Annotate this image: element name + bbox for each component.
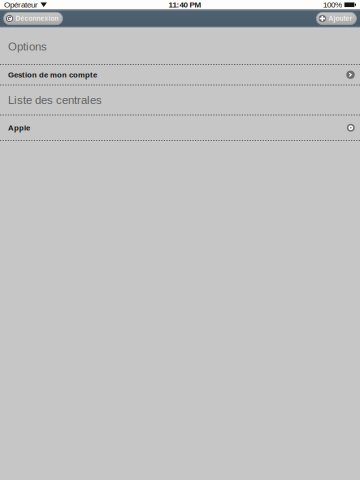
staticText: Ajouter (328, 15, 352, 22)
staticText: Gestion de mon compte (8, 70, 97, 79)
button[interactable]: Déconnexion (4, 12, 63, 25)
button[interactable]: Apple (0, 115, 360, 140)
staticText: 100% (323, 0, 342, 9)
staticText: Liste des centrales (8, 94, 102, 106)
staticText: Déconnexion (16, 15, 59, 22)
staticText: Opérateur (4, 0, 38, 9)
button[interactable]: Gestion de mon compte (0, 65, 360, 84)
button[interactable]: Ajouter (316, 12, 356, 25)
staticText: Apple (8, 123, 30, 132)
staticText: 11:40 PM (168, 0, 201, 9)
staticText: Options (8, 40, 47, 53)
